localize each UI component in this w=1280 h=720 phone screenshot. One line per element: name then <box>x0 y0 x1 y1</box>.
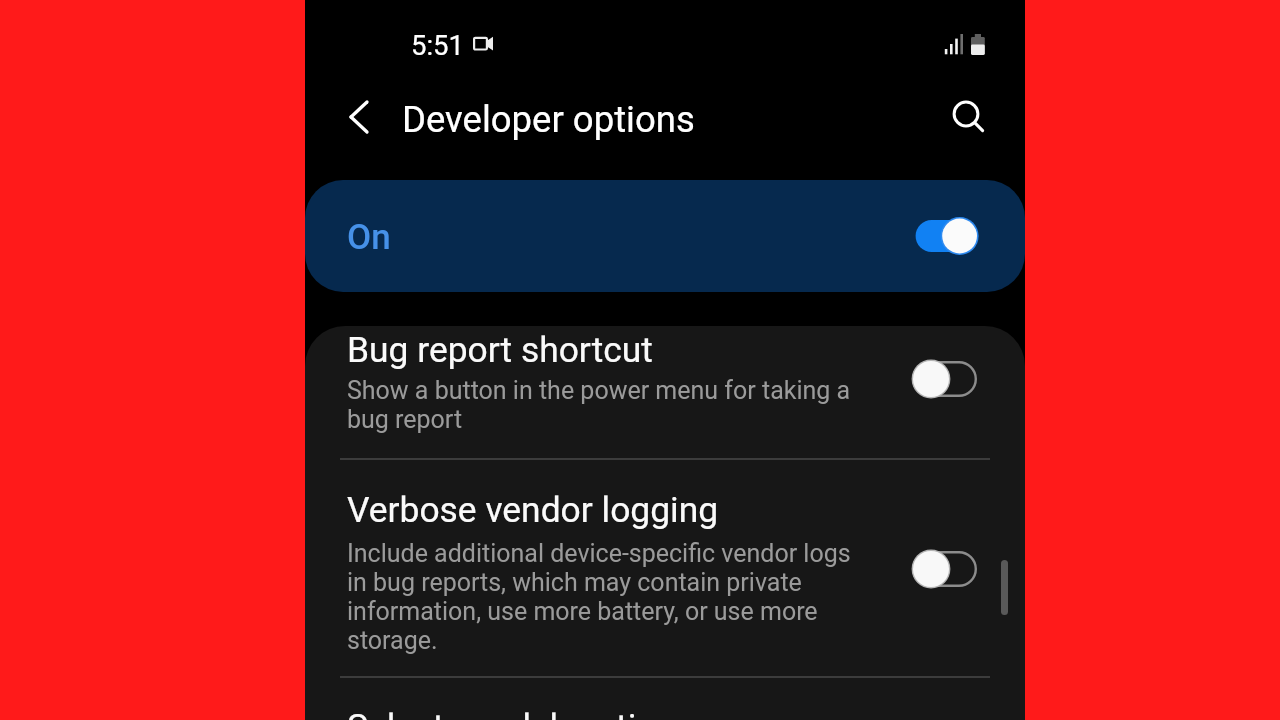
button[interactable]: Bug report shortcut toggle, off <box>910 358 982 400</box>
staticText: Include additional device-specific vendo… <box>347 539 851 655</box>
button[interactable]: Navigate up <box>327 93 379 143</box>
staticText: Show a button in the power menu for taki… <box>347 376 851 434</box>
button[interactable]: Verbose vendor logging <box>305 460 1025 678</box>
button[interactable]: Select mock location app <box>305 678 1025 720</box>
button[interactable]: Search <box>942 90 994 142</box>
button[interactable]: Bug report shortcut <box>305 326 1025 460</box>
button[interactable]: Verbose vendor logging toggle, off <box>910 548 982 590</box>
staticText: Verbose vendor logging <box>347 489 719 530</box>
staticText: On <box>347 217 391 258</box>
staticText: Developer options <box>402 98 695 141</box>
staticText: Bug report shortcut <box>347 329 653 370</box>
staticText: 5:51 <box>411 29 465 61</box>
staticText: Select mock location app <box>347 706 744 720</box>
button[interactable]: On <box>305 180 1025 292</box>
